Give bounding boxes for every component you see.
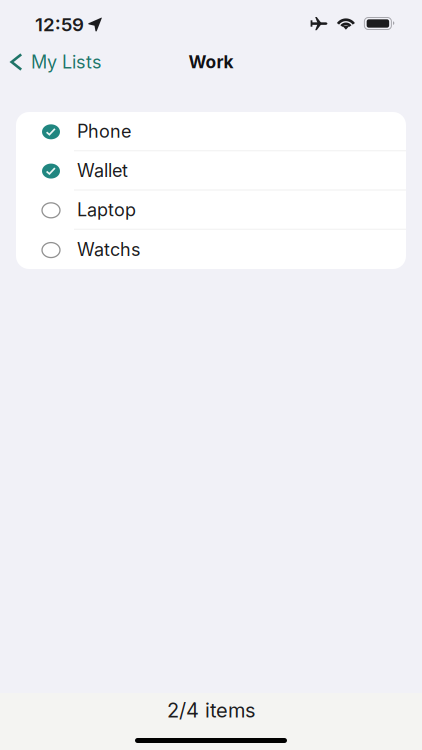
staticText: Work <box>188 51 233 72</box>
staticText: My Lists <box>31 51 102 73</box>
staticText: Phone <box>77 120 131 142</box>
staticText: Wallet <box>77 159 128 181</box>
button[interactable]: Watchs <box>16 230 406 269</box>
staticText: 12:59 <box>35 13 84 36</box>
button[interactable]: Phone <box>16 112 406 151</box>
staticText: 2/4 items <box>167 698 255 722</box>
staticText: Laptop <box>77 199 136 220</box>
staticText: Watchs <box>77 238 141 260</box>
button[interactable]: My Lists <box>0 47 114 77</box>
button[interactable]: Wallet <box>16 151 406 190</box>
button[interactable]: Laptop <box>16 190 406 230</box>
